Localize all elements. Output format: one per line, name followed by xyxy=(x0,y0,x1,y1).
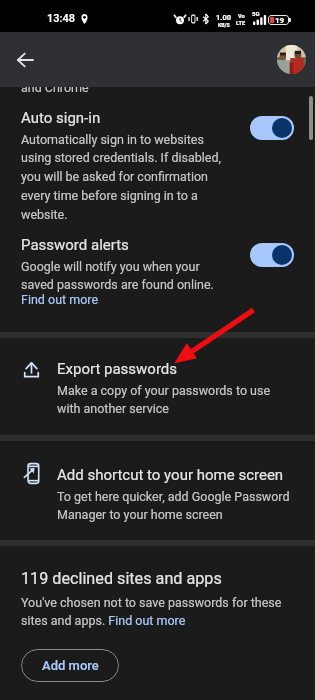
staticText: Vo xyxy=(238,13,245,20)
staticText: Add shortcut to your home screen xyxy=(57,466,284,484)
staticText: 13:48 xyxy=(47,12,75,25)
button[interactable]: Password alerts xyxy=(0,236,315,332)
button[interactable]: Auto sign-in xyxy=(0,104,315,236)
staticText: LTE xyxy=(236,20,246,27)
button[interactable]: Toggle xyxy=(250,116,294,140)
button[interactable]: Add shortcut to your home screen xyxy=(0,441,315,540)
staticText: 5G xyxy=(252,10,260,17)
staticText: 19 xyxy=(275,16,285,25)
staticText: Export passwords xyxy=(57,360,178,378)
button[interactable]: Back xyxy=(4,39,46,81)
staticText: Make a copy of your passwords to use wit… xyxy=(57,383,291,416)
staticText: To get here quicker, add Google Password… xyxy=(57,489,291,522)
staticText: Automatically sign in to websites using … xyxy=(21,132,232,222)
staticText: Find out more xyxy=(21,292,99,307)
button[interactable]: Account xyxy=(277,45,306,74)
staticText: and Chrome xyxy=(21,80,89,95)
staticText: Add more xyxy=(42,658,99,673)
staticText: Google will notify you when your saved p… xyxy=(21,259,232,292)
staticText: KB/S xyxy=(218,22,230,28)
button[interactable]: Export passwords xyxy=(0,338,315,435)
staticText: 119 declined sites and apps xyxy=(21,569,222,588)
staticText: Password alerts xyxy=(21,236,129,254)
staticText: You've chosen not to save passwords for … xyxy=(21,595,294,628)
button[interactable]: Add more xyxy=(21,649,119,682)
staticText: Auto sign-in xyxy=(21,109,101,127)
staticText: 1.00 xyxy=(216,13,232,22)
button[interactable]: Toggle xyxy=(250,243,294,267)
